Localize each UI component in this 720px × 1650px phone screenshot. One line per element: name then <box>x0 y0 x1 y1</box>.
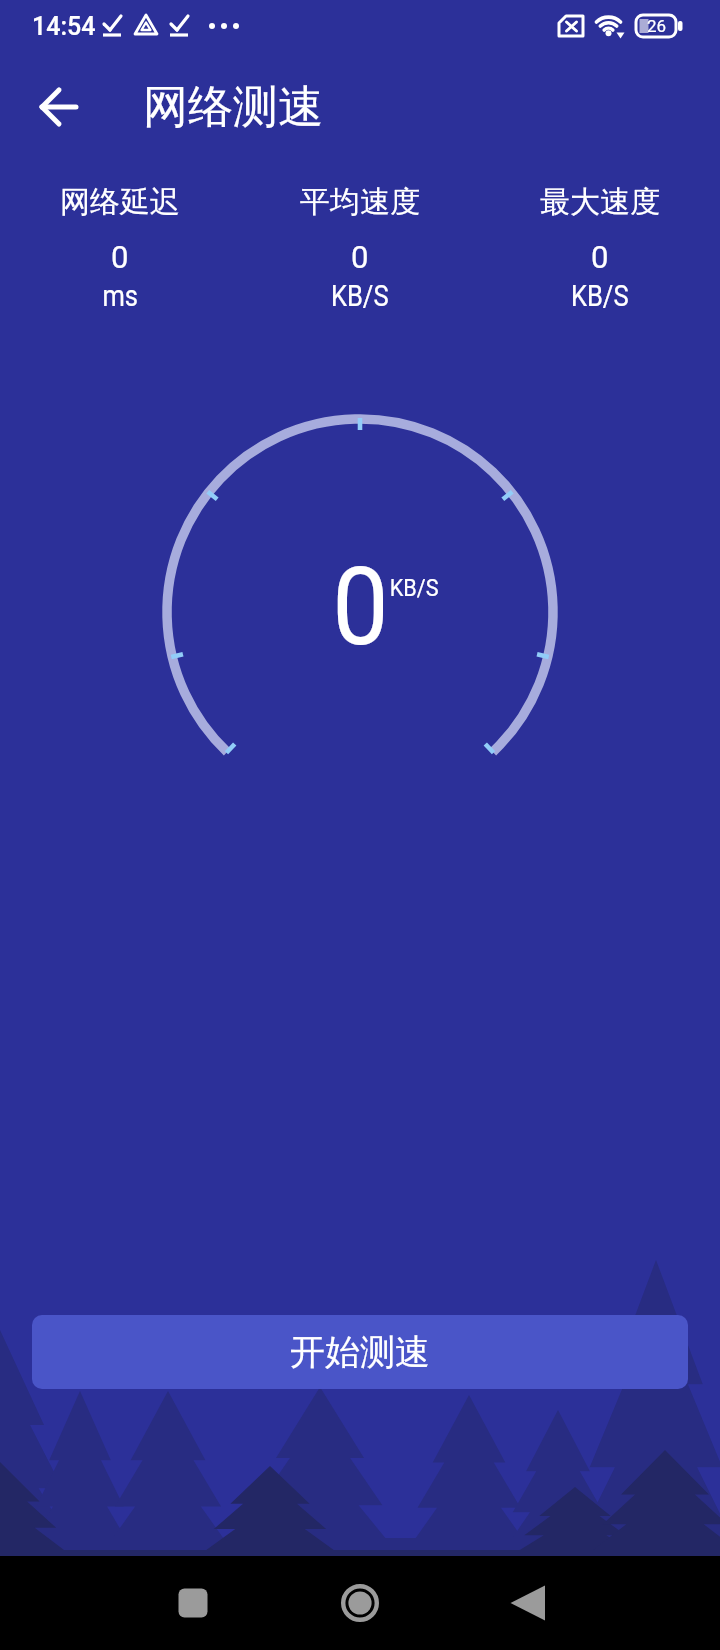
staticText: KB/S <box>331 279 389 313</box>
button[interactable] <box>110 1556 276 1650</box>
staticText: 网络测速 <box>143 79 323 136</box>
staticText: KB/S <box>390 574 439 600</box>
button[interactable] <box>30 77 90 137</box>
staticText: 0 <box>111 239 129 275</box>
staticText: 26 <box>647 16 667 36</box>
staticText: 最大速度 <box>540 183 660 221</box>
staticText: 0 <box>591 239 609 275</box>
staticText: 网络延迟 <box>60 183 180 221</box>
staticText: KB/S <box>571 279 629 313</box>
staticText: 开始测速 <box>290 1330 430 1374</box>
staticText: ms <box>102 279 139 313</box>
button[interactable] <box>276 1556 443 1650</box>
staticText: 平均速度 <box>300 183 420 221</box>
button[interactable]: 开始测速 <box>32 1315 688 1389</box>
staticText: 0 <box>332 544 389 671</box>
staticText: 0 <box>351 239 369 275</box>
staticText: 14:54 <box>32 12 96 41</box>
button[interactable] <box>443 1556 610 1650</box>
